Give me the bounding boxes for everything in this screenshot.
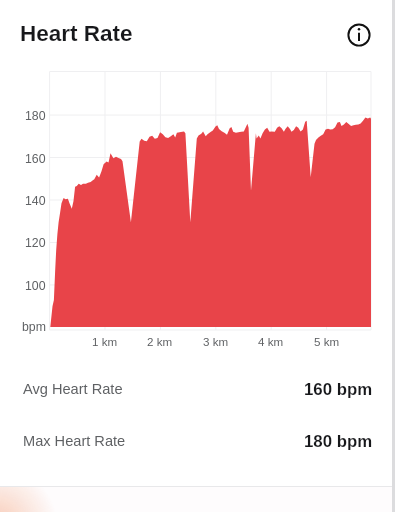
staticText: Avg Heart Rate [23,381,123,397]
staticText: bpm [22,320,46,334]
staticText: Heart Rate [20,21,133,46]
staticText: 120 [25,236,46,250]
button[interactable]: Max Heart Rate [0,415,395,467]
staticText: Max Heart Rate [23,433,126,449]
staticText: 180 bpm [304,432,373,451]
staticText: 180 [25,109,46,123]
staticText: 160 bpm [304,380,373,399]
button[interactable]: Info [339,15,379,55]
staticText: 160 [25,152,46,166]
staticText: 1 km [92,335,118,348]
button[interactable]: Avg Heart Rate [0,363,395,415]
staticText: 140 [25,194,46,208]
staticText: 3 km [203,335,229,348]
staticText: 4 km [258,335,284,348]
staticText: 2 km [147,335,173,348]
staticText: 5 km [314,335,340,348]
staticText: 100 [25,279,46,293]
